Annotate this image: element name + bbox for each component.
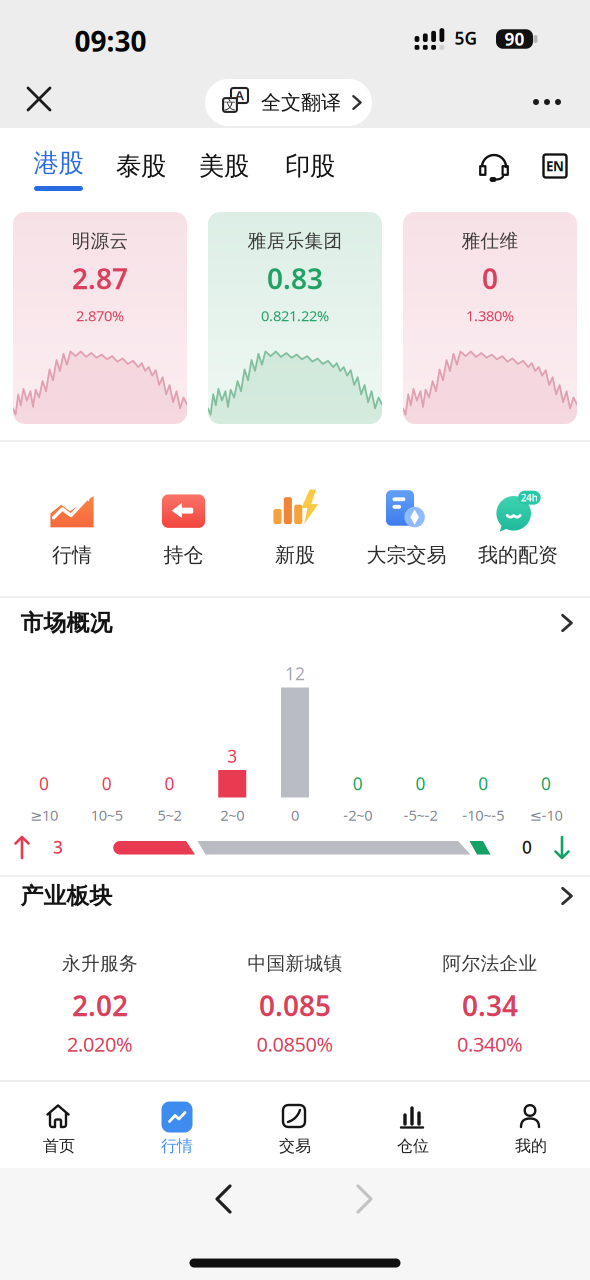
staticText: 泰股 (116, 150, 166, 181)
staticText: 印股 (285, 150, 335, 181)
button[interactable]: 雅居乐集团 (208, 212, 382, 424)
staticText: 0.821.22% (261, 306, 329, 325)
staticText: 0.085 (259, 987, 331, 1024)
staticText: 0 (291, 805, 299, 825)
staticText: 3 (227, 744, 237, 767)
staticText: 0 (522, 835, 532, 858)
staticText: 1.380% (466, 306, 514, 325)
button[interactable]: 美股 (188, 136, 260, 196)
staticText: 雅仕维 (461, 229, 518, 252)
button[interactable]: 我的 (486, 1085, 576, 1163)
staticText: 大宗交易 (366, 543, 446, 567)
staticText: 10~5 (91, 805, 123, 825)
button[interactable]: A (205, 79, 372, 126)
staticText: 12 (285, 662, 305, 685)
button[interactable]: 永升服务 (20, 945, 180, 1060)
staticText: 2.02 (72, 987, 128, 1024)
staticText: 持仓 (163, 543, 203, 567)
staticText: 0 (478, 772, 488, 795)
staticText: 0.340% (457, 1031, 523, 1057)
button[interactable]: 行情 (27, 483, 117, 569)
staticText: 阿尔法企业 (442, 952, 537, 975)
staticText: 仓位 (397, 1136, 429, 1156)
button[interactable]: 切换语言 (540, 151, 570, 181)
staticText: -5~-2 (403, 805, 437, 825)
staticText: 产业板块 (20, 882, 112, 910)
button[interactable]: 阿尔法企业 (410, 945, 570, 1060)
staticText: 0 (353, 772, 363, 795)
staticText: 0.0850% (256, 1031, 333, 1057)
staticText: 港股 (33, 147, 83, 178)
staticText: 24h (520, 492, 536, 505)
staticText: 2~0 (220, 805, 244, 825)
staticText: 0.83 (267, 260, 323, 297)
staticText: 行情 (161, 1136, 193, 1156)
staticText: -10~-5 (462, 805, 504, 825)
staticText: 市场概况 (20, 609, 112, 637)
staticText: 0 (482, 260, 498, 297)
staticText: 雅居乐集团 (247, 229, 342, 252)
staticText: 全文翻译 (261, 90, 341, 115)
staticText: 美股 (199, 150, 249, 181)
button[interactable]: 前进 (342, 1177, 386, 1221)
staticText: 中国新城镇 (247, 952, 342, 975)
staticText: 0.34 (462, 987, 518, 1024)
staticText: 0 (164, 772, 174, 795)
staticText: 0 (39, 772, 49, 795)
button[interactable]: 大宗交易 (361, 483, 451, 569)
staticText: 0 (541, 772, 551, 795)
button[interactable]: 持仓 (138, 483, 228, 569)
staticText: 2.87 (72, 260, 128, 297)
staticText: ≥10 (30, 805, 58, 825)
button[interactable]: 印股 (274, 136, 346, 196)
staticText: 3 (53, 835, 63, 858)
staticText: 我的配资 (478, 543, 558, 567)
staticText: 首页 (43, 1136, 75, 1156)
staticText: 0 (102, 772, 112, 795)
button[interactable]: 新股 (250, 483, 340, 569)
button[interactable]: 产业板块 (10, 881, 580, 917)
button[interactable]: 24h (473, 483, 563, 569)
staticText: 2.870% (76, 306, 124, 325)
button[interactable]: 市场概况 (10, 608, 580, 644)
staticText: 5~2 (157, 805, 181, 825)
button[interactable]: 雅仕维 (403, 212, 577, 424)
staticText: 我的 (515, 1136, 547, 1156)
staticText: 0 (415, 772, 425, 795)
staticText: 90 (504, 27, 524, 50)
staticText: 2.020% (67, 1031, 133, 1057)
staticText: 文 (224, 98, 236, 112)
staticText: EN (546, 157, 564, 175)
button[interactable]: 后退 (202, 1177, 246, 1221)
staticText: 5G (454, 26, 477, 49)
button[interactable]: 关闭 (17, 77, 61, 121)
button[interactable]: 交易 (250, 1085, 340, 1163)
button[interactable]: 行情 (132, 1085, 222, 1163)
staticText: 明源云 (71, 229, 128, 252)
button[interactable]: 仓位 (368, 1085, 458, 1163)
staticText: 交易 (279, 1136, 311, 1156)
staticText: 新股 (275, 543, 315, 567)
staticText: 09:30 (74, 22, 146, 60)
button[interactable]: 泰股 (105, 136, 177, 196)
staticText: ≤-10 (529, 805, 562, 825)
button[interactable]: 首页 (14, 1085, 104, 1163)
staticText: -2~0 (343, 805, 372, 825)
button[interactable]: 更多 (525, 80, 569, 124)
button[interactable]: 港股 (22, 136, 94, 196)
button[interactable]: 客服 (477, 148, 511, 184)
staticText: 行情 (52, 543, 92, 567)
staticText: 永升服务 (62, 952, 138, 975)
button[interactable]: 中国新城镇 (215, 945, 375, 1060)
staticText: A (235, 86, 244, 104)
button[interactable]: 明源云 (13, 212, 187, 424)
